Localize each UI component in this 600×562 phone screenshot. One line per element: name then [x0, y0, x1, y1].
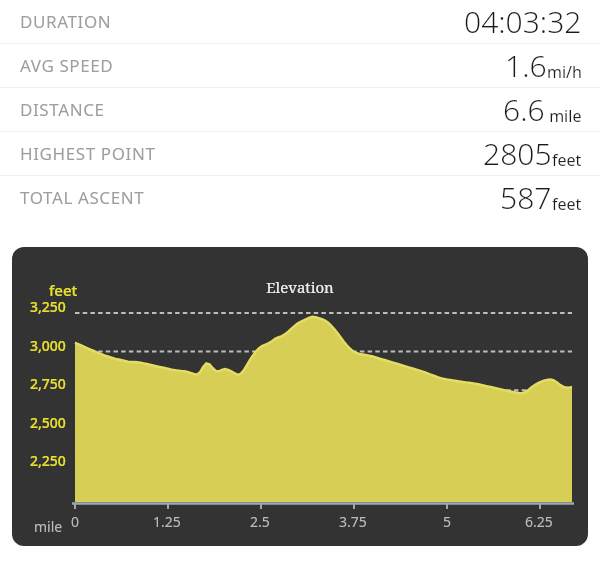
- staticText: 3,250: [30, 297, 66, 316]
- staticText: 1.25: [153, 512, 181, 531]
- staticText: feet: [552, 193, 582, 215]
- staticText: 3.75: [339, 512, 367, 531]
- button[interactable]: AVG SPEED: [0, 44, 600, 87]
- staticText: Elevation: [266, 277, 334, 297]
- staticText: 6.25: [525, 512, 553, 531]
- staticText: 2,500: [30, 413, 66, 432]
- staticText: 6.6: [503, 89, 545, 130]
- staticText: mi/h: [547, 61, 582, 83]
- staticText: 1.6: [505, 45, 547, 86]
- staticText: DISTANCE: [20, 98, 105, 121]
- staticText: 3,000: [30, 336, 66, 355]
- button[interactable]: HIGHEST POINT: [0, 132, 600, 175]
- staticText: 04:03:32: [464, 1, 582, 42]
- staticText: feet: [552, 149, 582, 171]
- staticText: mile: [545, 105, 582, 127]
- staticText: AVG SPEED: [20, 54, 114, 77]
- staticText: DURATION: [20, 10, 112, 33]
- button[interactable]: TOTAL ASCENT: [0, 176, 600, 219]
- button[interactable]: Elevation chart: [12, 247, 588, 546]
- button[interactable]: DISTANCE: [0, 88, 600, 131]
- staticText: TOTAL ASCENT: [20, 186, 145, 209]
- staticText: 0: [71, 512, 80, 531]
- staticText: 5: [443, 512, 452, 531]
- staticText: HIGHEST POINT: [20, 142, 156, 165]
- staticText: feet: [49, 280, 78, 300]
- staticText: 2,750: [30, 374, 66, 393]
- staticText: 2.5: [250, 512, 270, 531]
- staticText: 2805: [483, 133, 552, 174]
- staticText: mile: [34, 517, 63, 536]
- staticText: 587: [500, 177, 552, 218]
- button[interactable]: DURATION: [0, 0, 600, 43]
- staticText: 2,250: [30, 451, 66, 470]
